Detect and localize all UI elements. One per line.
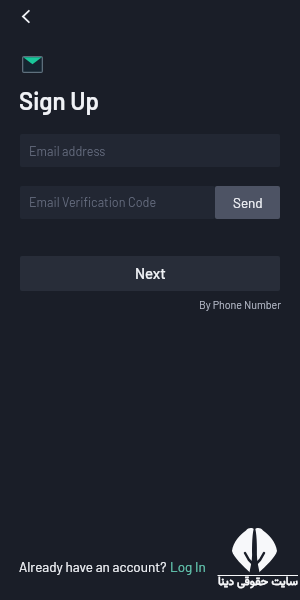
button[interactable]: Log In <box>170 558 206 574</box>
button[interactable]: By Phone Number <box>199 298 282 311</box>
staticText: Send <box>233 194 263 210</box>
staticText: Already have an account? <box>19 558 170 574</box>
button[interactable]: Email <box>21 54 44 75</box>
button[interactable]: Email Verification Code <box>20 186 215 219</box>
button[interactable]: Back <box>12 3 38 29</box>
staticText: سایت حقوقی دینا <box>218 573 298 591</box>
staticText: Next <box>135 264 166 282</box>
staticText: By Phone Number <box>199 298 282 311</box>
button[interactable]: Email address <box>20 134 280 167</box>
button[interactable]: Send <box>215 186 280 219</box>
staticText: Sign Up <box>19 86 100 115</box>
staticText: Email Verification Code <box>29 194 157 209</box>
staticText: Email address <box>29 143 106 158</box>
button[interactable]: Next <box>20 256 280 291</box>
staticText: Log In <box>170 558 206 574</box>
